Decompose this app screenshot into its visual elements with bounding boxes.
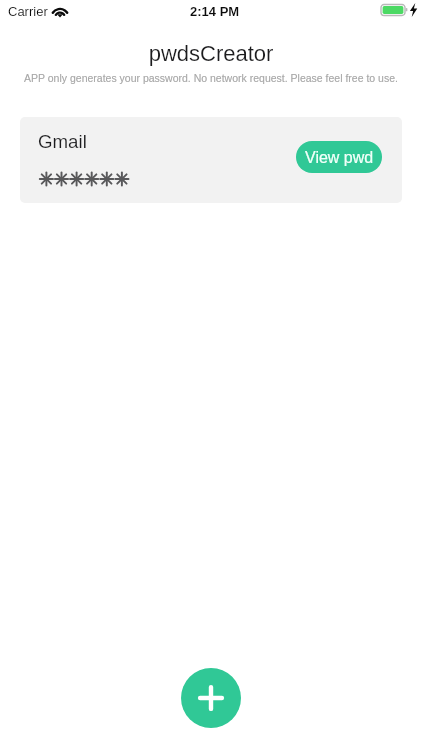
staticText: 2:14 PM bbox=[190, 4, 240, 19]
staticText: Gmail bbox=[38, 131, 87, 152]
staticText: View pwd bbox=[305, 149, 374, 167]
staticText: Carrier bbox=[8, 4, 48, 19]
staticText: APP only generates your password. No net… bbox=[0, 72, 422, 84]
button[interactable]: Gmail bbox=[20, 117, 402, 203]
staticText: pwdsCreator bbox=[0, 41, 422, 66]
button[interactable]: View pwd bbox=[296, 141, 382, 173]
button[interactable]: Add password bbox=[181, 668, 241, 728]
